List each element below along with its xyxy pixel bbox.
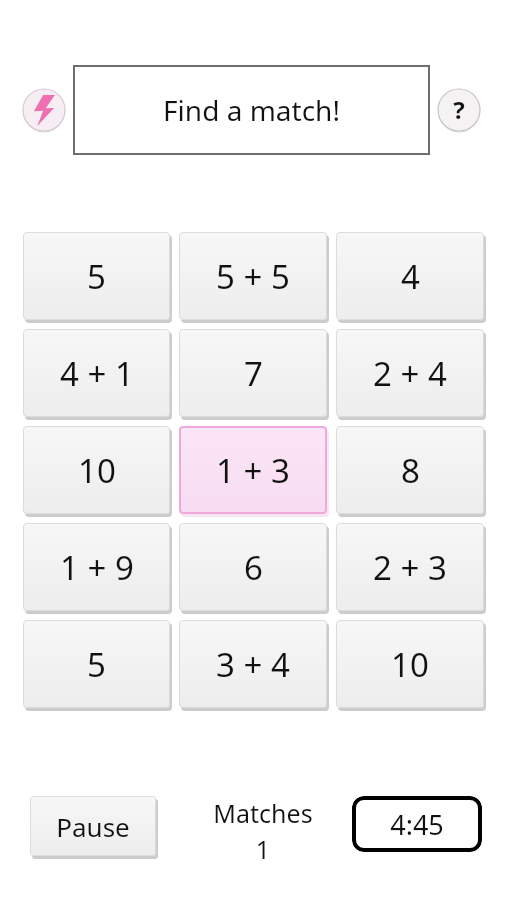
button[interactable]: Find a match! — [73, 65, 430, 155]
staticText: 10 — [391, 642, 429, 687]
button[interactable]: 7 — [179, 329, 327, 417]
staticText: 5 — [87, 254, 106, 299]
staticText: 1 + 9 — [60, 545, 134, 590]
staticText: Matches — [198, 796, 328, 830]
button[interactable]: Power up — [21, 87, 67, 133]
button[interactable]: 5 — [23, 232, 170, 320]
staticText: 4 — [401, 254, 420, 299]
button[interactable]: 5 + 5 — [179, 232, 327, 320]
button[interactable]: 4 + 1 — [23, 329, 170, 417]
staticText: 7 — [244, 351, 263, 396]
button[interactable]: 1 + 3 — [179, 426, 327, 514]
staticText: 4:45 — [390, 806, 444, 843]
staticText: 3 + 4 — [216, 642, 290, 687]
staticText: 5 + 5 — [216, 254, 290, 299]
staticText: 2 + 3 — [373, 545, 447, 590]
button[interactable]: 2 + 4 — [336, 329, 484, 417]
staticText: Find a match! — [163, 91, 340, 129]
button[interactable]: 3 + 4 — [179, 620, 327, 708]
button[interactable]: 4 — [336, 232, 484, 320]
staticText: 2 + 4 — [373, 351, 447, 396]
button[interactable]: 2 + 3 — [336, 523, 484, 611]
staticText: 8 — [401, 448, 420, 493]
button[interactable]: 1 + 9 — [23, 523, 170, 611]
button[interactable]: 6 — [179, 523, 327, 611]
staticText: 1 + 3 — [216, 448, 290, 493]
staticText: ? — [453, 93, 465, 126]
staticText: 5 — [87, 642, 106, 687]
staticText: 6 — [244, 545, 263, 590]
button[interactable]: 10 — [336, 620, 484, 708]
button[interactable]: 10 — [23, 426, 170, 514]
staticText: 10 — [78, 448, 116, 493]
button[interactable]: 5 — [23, 620, 170, 708]
button[interactable]: 4:45 — [352, 796, 482, 852]
staticText: 4 + 1 — [60, 351, 134, 396]
button[interactable]: Pause — [30, 796, 156, 856]
staticText: Pause — [56, 809, 130, 844]
button[interactable]: Help — [436, 87, 482, 133]
staticText: 1 — [198, 832, 328, 866]
button[interactable]: 8 — [336, 426, 484, 514]
